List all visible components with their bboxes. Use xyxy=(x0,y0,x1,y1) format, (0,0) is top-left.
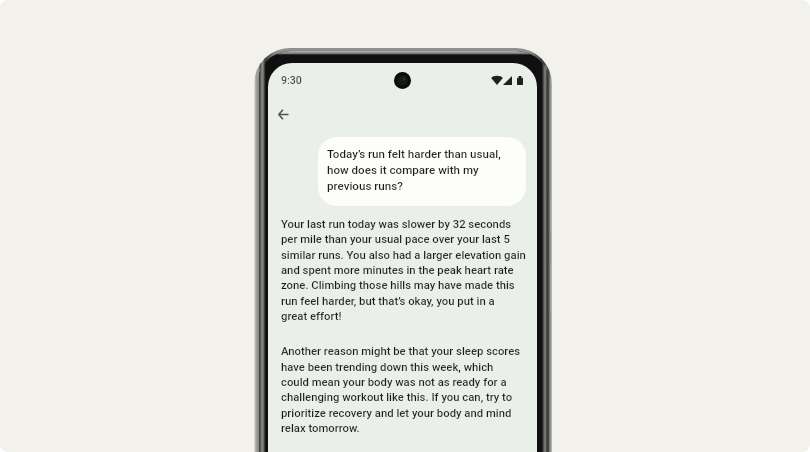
staticText: relax tomorrow. xyxy=(281,422,360,435)
staticText: Today’s run felt harder than usual, xyxy=(327,147,501,161)
staticText: prioritize recovery and let your body an… xyxy=(281,407,512,420)
staticText: run feel harder, but that’s okay, you pu… xyxy=(281,295,495,308)
staticText: and spent more minutes in the peak heart… xyxy=(281,264,514,277)
button[interactable]: Today’s run felt harder than usual, xyxy=(318,137,526,206)
staticText: similar runs. You also had a larger elev… xyxy=(281,249,526,262)
staticText: great effort! xyxy=(281,310,342,323)
staticText: 9:30 xyxy=(281,74,302,86)
staticText: have been trending down this week, which xyxy=(281,361,494,374)
button[interactable]: Back xyxy=(271,102,296,127)
staticText: previous runs? xyxy=(327,179,403,193)
staticText: per mile than your usual pace over your … xyxy=(281,233,510,246)
staticText: challenging workout like this. If you ca… xyxy=(281,391,513,404)
staticText: Another reason might be that your sleep … xyxy=(281,345,521,358)
staticText: Your last run today was slower by 32 sec… xyxy=(281,218,512,231)
staticText: how does it compare with my xyxy=(327,163,479,177)
staticText: could mean your body was not as ready fo… xyxy=(281,376,507,389)
staticText: zone. Climbing those hills may have made… xyxy=(281,279,515,292)
